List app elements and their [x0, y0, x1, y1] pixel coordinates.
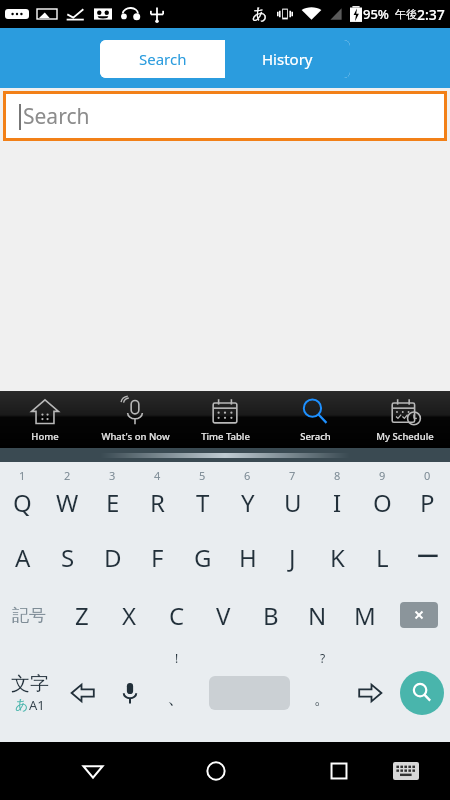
staticText: A1 [29, 696, 45, 714]
staticText: L [376, 541, 389, 574]
button[interactable]: Home [181, 742, 251, 800]
staticText: 、 [167, 686, 186, 710]
button[interactable]: 0 [405, 466, 450, 528]
button[interactable]: G [180, 528, 225, 586]
button[interactable]: J [270, 528, 315, 586]
staticText: 5 [199, 468, 206, 483]
button[interactable]: 1 [0, 466, 45, 528]
button[interactable]: Serach [270, 391, 360, 448]
button[interactable]: ! [153, 644, 200, 742]
staticText: 記号 [12, 605, 46, 626]
staticText: 2:37 [417, 5, 445, 24]
button[interactable]: Time Table [180, 391, 270, 448]
staticText: Y [241, 486, 255, 519]
button[interactable]: 2 [45, 466, 90, 528]
staticText: 1 [19, 468, 26, 483]
button[interactable]: X [106, 586, 153, 644]
button[interactable]: Back [58, 742, 128, 800]
staticText: ! [175, 650, 179, 666]
button[interactable]: Recent apps [304, 742, 374, 800]
staticText: D [104, 541, 122, 574]
staticText: B [263, 599, 279, 632]
staticText: M [354, 599, 376, 632]
staticText: 午後 [395, 7, 417, 21]
staticText: 3 [109, 468, 116, 483]
button[interactable]: ? [299, 644, 346, 742]
button[interactable]: What's on Now [90, 391, 180, 448]
button[interactable]: Search [393, 644, 450, 742]
staticText: T [196, 486, 210, 519]
staticText: J [289, 541, 296, 574]
button[interactable]: 3 [90, 466, 135, 528]
button[interactable]: Voice input [106, 644, 153, 742]
staticText: S [61, 541, 75, 574]
button[interactable]: 9 [360, 466, 405, 528]
staticText: Search [23, 102, 90, 131]
button[interactable]: My Schedule [360, 391, 450, 448]
staticText: F [151, 541, 164, 574]
button[interactable]: N [294, 586, 341, 644]
button[interactable]: 5 [180, 466, 225, 528]
button[interactable]: C [153, 586, 200, 644]
button[interactable]: 8 [315, 466, 360, 528]
staticText: History [262, 49, 313, 69]
button[interactable]: 6 [225, 466, 270, 528]
button[interactable]: L [360, 528, 405, 586]
button[interactable]: D [90, 528, 135, 586]
staticText: Time Table [201, 430, 250, 443]
staticText: 8 [334, 468, 341, 483]
button[interactable]: 記号 [0, 586, 58, 644]
button[interactable]: H [225, 528, 270, 586]
staticText: 9 [379, 468, 386, 483]
staticText: 文字 [11, 672, 49, 696]
staticText: U [284, 486, 302, 519]
button[interactable]: Space [200, 644, 299, 742]
staticText: W [56, 486, 79, 519]
staticText: 7 [289, 468, 296, 483]
staticText: R [150, 486, 165, 519]
button[interactable]: Switch keyboard [374, 742, 438, 800]
staticText: E [106, 486, 120, 519]
button[interactable]: B [247, 586, 294, 644]
staticText: 0 [424, 468, 431, 483]
button[interactable]: Cursor left [59, 644, 106, 742]
staticText: Home [31, 430, 59, 443]
staticText: What's on Now [101, 430, 170, 443]
staticText: G [194, 541, 212, 574]
button[interactable]: 4 [135, 466, 180, 528]
staticText: Serach [300, 430, 331, 443]
button[interactable]: Cursor right [346, 644, 393, 742]
button[interactable]: Backspace [388, 586, 450, 644]
button[interactable]: K [315, 528, 360, 586]
button[interactable]: 7 [270, 466, 315, 528]
staticText: Q [13, 486, 32, 519]
staticText: ? [320, 650, 326, 666]
staticText: My Schedule [376, 430, 434, 443]
button[interactable]: Home [0, 391, 90, 448]
staticText: N [308, 599, 327, 632]
button[interactable]: V [200, 586, 247, 644]
button[interactable]: M [341, 586, 388, 644]
button[interactable]: A [0, 528, 45, 586]
staticText: C [169, 599, 185, 632]
staticText: O [373, 486, 392, 519]
button[interactable]: Z [58, 586, 106, 644]
button[interactable]: History [225, 40, 350, 78]
staticText: H [239, 541, 257, 574]
staticText: 95% [363, 5, 389, 23]
staticText: Z [75, 599, 89, 632]
button[interactable]: 文字 [0, 644, 59, 742]
staticText: V [216, 599, 231, 632]
staticText: X [122, 599, 137, 632]
staticText: あ [15, 696, 29, 712]
staticText: 6 [244, 468, 251, 483]
button[interactable]: Search [100, 40, 225, 78]
button[interactable]: Search [6, 94, 444, 138]
button[interactable]: ー [405, 528, 450, 586]
staticText: 。 [314, 688, 331, 709]
button[interactable]: F [135, 528, 180, 586]
button[interactable]: S [45, 528, 90, 586]
staticText: Search [139, 49, 187, 69]
staticText: 4 [154, 468, 161, 483]
staticText: 2 [64, 468, 71, 483]
